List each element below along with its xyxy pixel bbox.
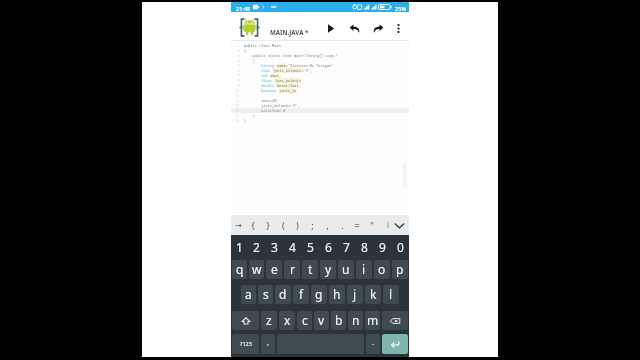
button[interactable]: ,	[320, 215, 334, 235]
button[interactable]: {	[246, 215, 260, 235]
staticText: String[] args	[306, 53, 335, 58]
button[interactable]: Shift	[232, 311, 259, 330]
button[interactable]: Hide keyboard	[392, 215, 406, 235]
staticText: int	[244, 73, 270, 78]
button[interactable]: ;	[305, 215, 319, 235]
button[interactable]: "	[365, 215, 379, 235]
staticText: 13	[236, 104, 240, 108]
staticText: 15	[236, 114, 240, 118]
staticText: ,	[326, 219, 329, 232]
button[interactable]: .	[366, 334, 380, 354]
staticText: )	[335, 53, 338, 58]
button[interactable]: i	[356, 260, 372, 279]
staticText: n	[352, 312, 360, 328]
button[interactable]: h	[329, 285, 345, 304]
button[interactable]: l	[383, 285, 399, 304]
button[interactable]: 7	[337, 235, 355, 258]
button[interactable]: m	[365, 311, 380, 330]
staticText: g	[315, 286, 323, 302]
button[interactable]: x	[279, 311, 295, 330]
staticText: y	[325, 261, 332, 277]
button[interactable]: c	[297, 311, 312, 330]
button[interactable]: 5	[301, 235, 319, 258]
staticText: .	[341, 219, 344, 232]
staticText: b	[335, 312, 343, 328]
button[interactable]: More options	[390, 20, 406, 36]
staticText: 5	[307, 239, 314, 255]
button[interactable]: j	[347, 285, 363, 304]
button[interactable]: k	[365, 285, 381, 304]
staticText: berat/faat	[277, 83, 299, 88]
button[interactable]: y	[320, 260, 336, 279]
button[interactable]: a	[241, 285, 256, 304]
staticText: double	[244, 83, 277, 88]
button[interactable]: 6	[319, 235, 337, 258]
button[interactable]: t	[302, 260, 318, 279]
staticText: ='P';	[302, 68, 313, 73]
staticText: 4	[289, 239, 296, 255]
staticText: 12	[236, 99, 240, 103]
staticText: 1	[238, 44, 240, 48]
staticText: s	[263, 286, 269, 302]
staticText: jenis_kelamin='P';	[244, 103, 301, 108]
button[interactable]: 4	[283, 235, 301, 258]
button[interactable]: 3	[265, 235, 283, 258]
staticText: j	[353, 286, 357, 302]
staticText: )	[296, 219, 299, 232]
button[interactable]: (	[276, 215, 290, 235]
button[interactable]: r	[284, 260, 300, 279]
staticText: 9	[379, 239, 386, 255]
button[interactable]: d	[275, 285, 291, 304]
button[interactable]: 1	[231, 235, 248, 258]
staticText: {	[244, 58, 255, 63]
button[interactable]: u	[338, 260, 354, 279]
button[interactable]: 9	[373, 235, 391, 258]
button[interactable]: p	[392, 260, 408, 279]
staticText: luas_belanja	[275, 78, 301, 83]
staticText: l	[389, 286, 393, 302]
button[interactable]: 2	[248, 235, 265, 258]
button[interactable]: →	[231, 215, 245, 235]
staticText: {	[244, 48, 247, 53]
button[interactable]: g	[311, 285, 327, 304]
staticText: w	[252, 261, 262, 277]
staticText: 6	[325, 239, 332, 255]
button[interactable]: )	[290, 215, 304, 235]
staticText: d	[283, 108, 286, 113]
staticText: public class Main	[244, 43, 281, 48]
staticText: 3	[271, 239, 278, 255]
button[interactable]: Run	[322, 20, 338, 36]
button[interactable]: o	[374, 260, 390, 279]
button[interactable]: 8	[355, 235, 373, 258]
staticText: ;	[279, 73, 282, 78]
staticText: a	[245, 286, 252, 302]
button[interactable]: =	[350, 215, 364, 235]
button[interactable]: App icon	[239, 18, 260, 37]
button[interactable]: b	[331, 311, 346, 330]
button[interactable]: n	[348, 311, 363, 330]
button[interactable]: v	[314, 311, 329, 330]
button[interactable]: }	[261, 215, 275, 235]
button[interactable]: Enter	[382, 334, 408, 354]
staticText: ;	[311, 219, 314, 232]
button[interactable]: Redo	[370, 20, 386, 36]
button[interactable]: s	[258, 285, 273, 304]
staticText: String	[244, 63, 277, 68]
button[interactable]: ?123	[232, 334, 259, 354]
button[interactable]: q	[232, 260, 247, 279]
button[interactable]: Undo	[346, 20, 362, 36]
button[interactable]: .	[335, 215, 349, 235]
button[interactable]: Backspace	[382, 311, 408, 330]
staticText: (	[303, 53, 306, 58]
staticText: .	[372, 338, 374, 348]
button[interactable]: ,	[261, 334, 275, 354]
button[interactable]: e	[266, 260, 282, 279]
staticText: 6	[238, 69, 240, 73]
button[interactable]: f	[293, 285, 309, 304]
button[interactable]: z	[261, 311, 277, 330]
staticText: 21:48	[236, 5, 251, 13]
button[interactable]: w	[249, 260, 264, 279]
staticText: 14	[236, 109, 240, 113]
button[interactable]: 0	[391, 235, 409, 258]
